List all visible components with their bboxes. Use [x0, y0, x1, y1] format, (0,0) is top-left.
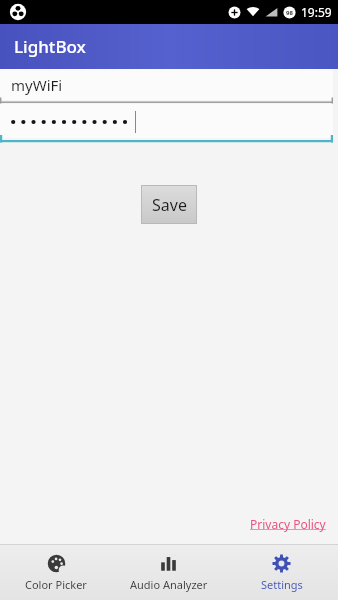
button[interactable]: myWiFi [0, 69, 338, 104]
button[interactable]: Settings [225, 545, 338, 600]
staticText: 19:59 [301, 4, 332, 20]
staticText: Color Picker [25, 577, 87, 592]
button[interactable]: Color Picker [0, 545, 112, 600]
staticText: 98 [286, 9, 293, 17]
staticText: Settings [261, 577, 303, 592]
button[interactable]: Privacy Policy [250, 516, 326, 532]
staticText: Audio Analyzer [130, 577, 208, 592]
button[interactable]: Save [142, 186, 196, 223]
staticText: LightBox [14, 35, 86, 58]
staticText: Save [152, 194, 187, 216]
button[interactable] [0, 104, 338, 143]
staticText: myWiFi [11, 75, 63, 95]
button[interactable]: Audio Analyzer [112, 545, 225, 600]
